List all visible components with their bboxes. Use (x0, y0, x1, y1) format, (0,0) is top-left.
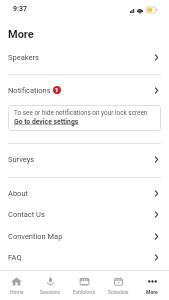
staticText: Notifications (8, 86, 51, 95)
staticText: Contact Us (8, 210, 45, 219)
button[interactable]: Convention Map (0, 225, 169, 247)
button[interactable]: Notifications (0, 79, 169, 101)
other: Open (154, 53, 160, 62)
button[interactable]: FAQ (0, 246, 169, 268)
staticText: To see or hide notifications on your loc… (14, 109, 148, 117)
button[interactable]: Exhibitors (67, 276, 101, 295)
staticText: Convention Map (8, 232, 63, 241)
staticText: More (146, 289, 158, 295)
staticText: Sessions (40, 289, 61, 295)
staticText: About (8, 189, 28, 198)
staticText: FAQ (8, 253, 22, 262)
button[interactable]: About (0, 182, 169, 204)
button[interactable]: Go to device settings (14, 118, 79, 126)
button[interactable]: Schedule (101, 276, 135, 295)
staticText: Home (10, 289, 24, 295)
other: Open (154, 86, 160, 95)
other: Open (154, 189, 160, 198)
staticText: Surveys (8, 155, 35, 164)
other: Open (154, 155, 160, 164)
staticText: More (8, 28, 34, 41)
staticText: Exhibitors (73, 289, 96, 295)
button[interactable]: More (135, 276, 169, 295)
other: Open (154, 210, 160, 219)
staticText: 1 (55, 87, 59, 93)
button[interactable]: Sessions (33, 276, 67, 295)
button[interactable]: Home (0, 276, 33, 295)
button[interactable]: Surveys (0, 148, 169, 170)
staticText: Schedule (108, 289, 129, 295)
staticText: 9:37 (13, 5, 28, 13)
other: Open (154, 253, 160, 262)
staticText: Speakers (8, 53, 39, 62)
button[interactable]: Contact Us (0, 203, 169, 225)
button[interactable]: Speakers (0, 46, 169, 68)
other: Open (154, 232, 160, 241)
